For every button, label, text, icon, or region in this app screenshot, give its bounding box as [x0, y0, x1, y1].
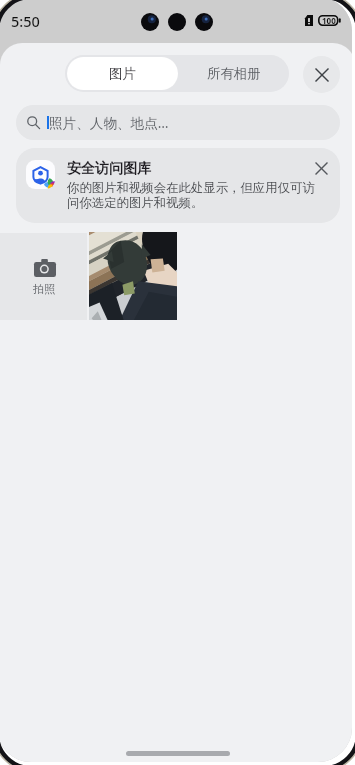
staticText: 你的图片和视频会在此处显示，但应用仅可访问你选定的图片和视频。: [67, 180, 325, 211]
staticText: 图片: [109, 65, 136, 82]
button[interactable]: 照片、人物、地点…: [16, 105, 340, 140]
staticText: 照片、人物、地点…: [49, 113, 169, 132]
staticText: 5:50: [11, 11, 40, 31]
button[interactable]: 拍照: [0, 233, 87, 320]
staticText: 拍照: [33, 282, 56, 296]
button[interactable]: Close: [303, 56, 340, 93]
button[interactable]: 所有相册: [178, 55, 289, 92]
button[interactable]: Dismiss: [308, 155, 334, 181]
button[interactable]: 图片: [67, 57, 178, 90]
staticText: 100: [322, 15, 336, 26]
button[interactable]: [89, 232, 177, 320]
staticText: 所有相册: [207, 65, 261, 82]
staticText: 安全访问图库: [67, 160, 151, 178]
